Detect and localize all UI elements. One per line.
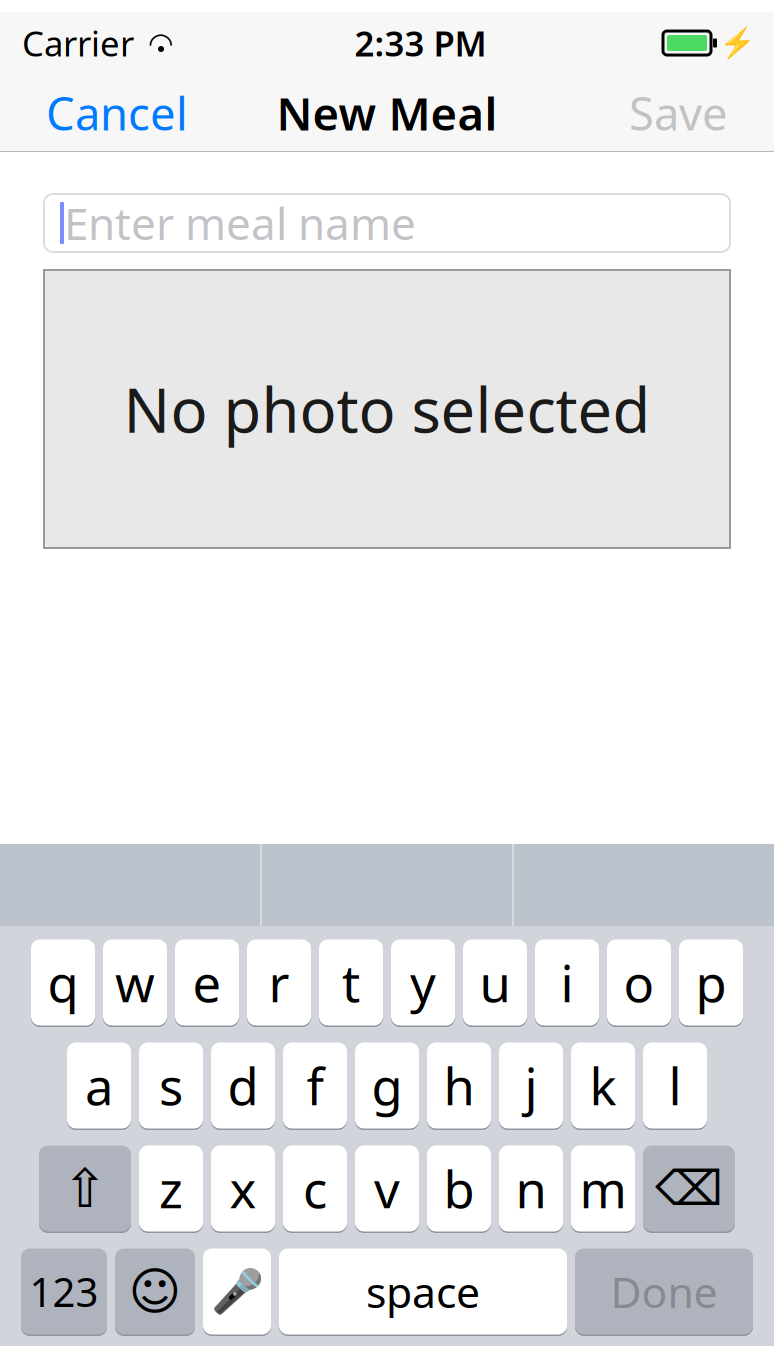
staticText: space: [366, 1263, 480, 1320]
button[interactable]: s: [139, 1041, 203, 1130]
button[interactable]: f: [283, 1041, 347, 1130]
staticText: n: [515, 1155, 546, 1222]
staticText: i: [560, 949, 573, 1016]
staticText: r: [268, 949, 289, 1016]
staticText: f: [306, 1052, 323, 1119]
button[interactable]: h: [427, 1041, 491, 1130]
button[interactable]: x: [211, 1144, 275, 1233]
button[interactable]: e: [175, 938, 239, 1027]
button[interactable]: v: [355, 1144, 419, 1233]
button[interactable]: b: [427, 1144, 491, 1233]
staticText: l: [668, 1052, 681, 1119]
staticText: j: [524, 1052, 537, 1119]
staticText: y: [410, 949, 436, 1016]
staticText: New Meal: [276, 83, 497, 143]
button[interactable]: o: [607, 938, 671, 1027]
staticText: Enter meal name: [64, 194, 416, 252]
staticText: z: [159, 1155, 183, 1222]
button[interactable]: Shift: [39, 1144, 131, 1233]
button[interactable]: u: [463, 938, 527, 1027]
staticText: x: [229, 1155, 256, 1222]
staticText: Done: [610, 1263, 717, 1320]
button[interactable]: m: [571, 1144, 635, 1233]
staticText: p: [695, 949, 726, 1016]
staticText: ⌫: [655, 1161, 723, 1216]
button[interactable]: Emoji: [115, 1247, 195, 1336]
staticText: Cancel: [46, 83, 188, 143]
button[interactable]: i: [535, 938, 599, 1027]
button[interactable]: y: [391, 938, 455, 1027]
staticText: Carrier: [22, 20, 134, 66]
button[interactable]: Save: [613, 74, 744, 152]
staticText: ⚡: [719, 26, 756, 60]
staticText: 🎤: [210, 1267, 263, 1316]
button[interactable]: n: [499, 1144, 563, 1233]
staticText: ◠: [148, 26, 174, 60]
staticText: d: [227, 1052, 258, 1119]
button[interactable]: q: [31, 938, 95, 1027]
button[interactable]: j: [499, 1041, 563, 1130]
staticText: m: [579, 1155, 626, 1222]
button[interactable]: t: [319, 938, 383, 1027]
button[interactable]: Delete: [643, 1144, 735, 1233]
button[interactable]: Done: [575, 1247, 753, 1336]
staticText: h: [443, 1052, 474, 1119]
staticText: o: [623, 949, 654, 1016]
button[interactable]: w: [103, 938, 167, 1027]
button[interactable]: Numbers: [21, 1247, 107, 1336]
staticText: g: [371, 1052, 402, 1119]
staticText: t: [342, 949, 360, 1016]
staticText: s: [159, 1052, 183, 1119]
button[interactable]: z: [139, 1144, 203, 1233]
staticText: q: [47, 949, 78, 1016]
staticText: Save: [629, 83, 728, 143]
button[interactable]: p: [679, 938, 743, 1027]
staticText: w: [115, 949, 155, 1016]
staticText: v: [374, 1155, 400, 1222]
button[interactable]: l: [643, 1041, 707, 1130]
staticText: a: [85, 1052, 113, 1119]
button[interactable]: r: [247, 938, 311, 1027]
staticText: u: [479, 949, 510, 1016]
button[interactable]: Cancel: [30, 74, 204, 152]
button[interactable]: space: [279, 1247, 567, 1336]
staticText: c: [303, 1155, 327, 1222]
staticText: 2:33 PM: [354, 20, 486, 66]
staticText: ⇧: [62, 1158, 107, 1219]
button[interactable]: k: [571, 1041, 635, 1130]
staticText: ☺: [128, 1263, 181, 1320]
button[interactable]: c: [283, 1144, 347, 1233]
staticText: No photo selected: [123, 368, 650, 450]
button[interactable]: d: [211, 1041, 275, 1130]
staticText: b: [443, 1155, 474, 1222]
button[interactable]: g: [355, 1041, 419, 1130]
button[interactable]: a: [67, 1041, 131, 1130]
staticText: e: [192, 949, 221, 1016]
staticText: k: [589, 1052, 616, 1119]
staticText: 123: [29, 1265, 98, 1318]
button[interactable]: Dictation: [203, 1247, 271, 1336]
